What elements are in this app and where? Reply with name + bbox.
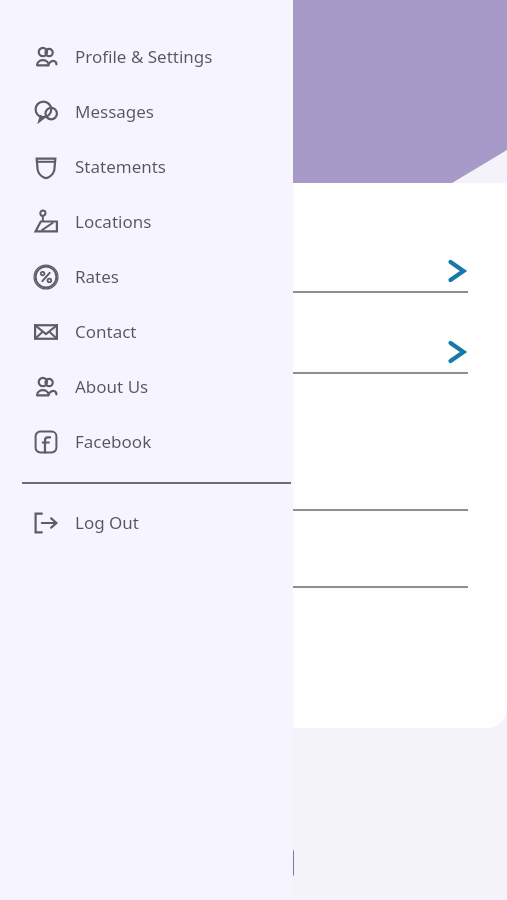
staticText: Locations bbox=[75, 210, 152, 233]
staticText: Messages bbox=[75, 100, 155, 123]
button[interactable]: Profile & Settings bbox=[0, 29, 293, 84]
button[interactable]: Statements bbox=[0, 139, 293, 194]
staticText: Log Out bbox=[75, 511, 139, 534]
button[interactable]: Transfer bbox=[199, 834, 309, 892]
staticText: Rates bbox=[75, 265, 119, 288]
button[interactable]: Rates bbox=[0, 249, 293, 304]
staticText: Statements bbox=[75, 155, 167, 178]
staticText: About Us bbox=[75, 375, 149, 398]
button[interactable]: Scheduled bbox=[0, 100, 200, 172]
staticText: Facebook bbox=[75, 430, 152, 453]
staticText: Profile & Settings bbox=[75, 45, 213, 68]
staticText: Contact bbox=[75, 320, 137, 343]
button[interactable]: Contact bbox=[0, 304, 293, 359]
button[interactable]: Log Out bbox=[0, 495, 293, 550]
button[interactable]: Facebook bbox=[0, 414, 293, 469]
button[interactable]: Messages bbox=[0, 84, 293, 139]
button[interactable]: Locations bbox=[0, 194, 293, 249]
button[interactable]: About Us bbox=[0, 359, 293, 414]
